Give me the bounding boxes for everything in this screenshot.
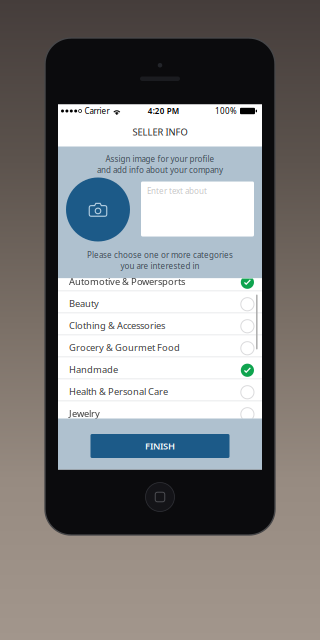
button[interactable]: FINISH (90, 434, 229, 458)
staticText: Beauty (69, 297, 99, 310)
button[interactable]: Handmade (58, 357, 262, 379)
staticText: Grocery & Gourmet Food (69, 341, 180, 354)
button[interactable]: Enter text about (141, 181, 254, 236)
staticText: Automotive & Powersports (69, 275, 185, 288)
staticText: Please choose one or more categories (87, 249, 233, 260)
button[interactable]: Grocery & Gourmet Food (58, 335, 262, 357)
button[interactable]: Clothing & Accessories (58, 313, 262, 335)
staticText: and add info about your company (97, 165, 223, 175)
staticText: Carrier (85, 106, 110, 116)
button[interactable]: Health & Personal Care (58, 379, 262, 401)
staticText: Health & Personal Care (69, 385, 168, 398)
staticText: you are interested in (120, 261, 199, 271)
staticText: Handmade (69, 363, 118, 376)
button[interactable]: Automotive & Powersports (58, 269, 262, 291)
staticText: Assign image for your profile (105, 153, 214, 164)
staticText: Jewelry (69, 407, 100, 420)
button[interactable]: Add profile image (66, 177, 130, 241)
staticText: Clothing & Accessories (69, 319, 165, 332)
staticText: FINISH (145, 440, 175, 452)
button[interactable]: Beauty (58, 291, 262, 313)
button[interactable]: Jewelry (58, 401, 262, 423)
staticText: SELLER INFO (132, 126, 187, 138)
staticText: 100% (215, 106, 237, 116)
staticText: 4:20 PM (148, 106, 179, 116)
staticText: Enter text about (147, 185, 207, 196)
